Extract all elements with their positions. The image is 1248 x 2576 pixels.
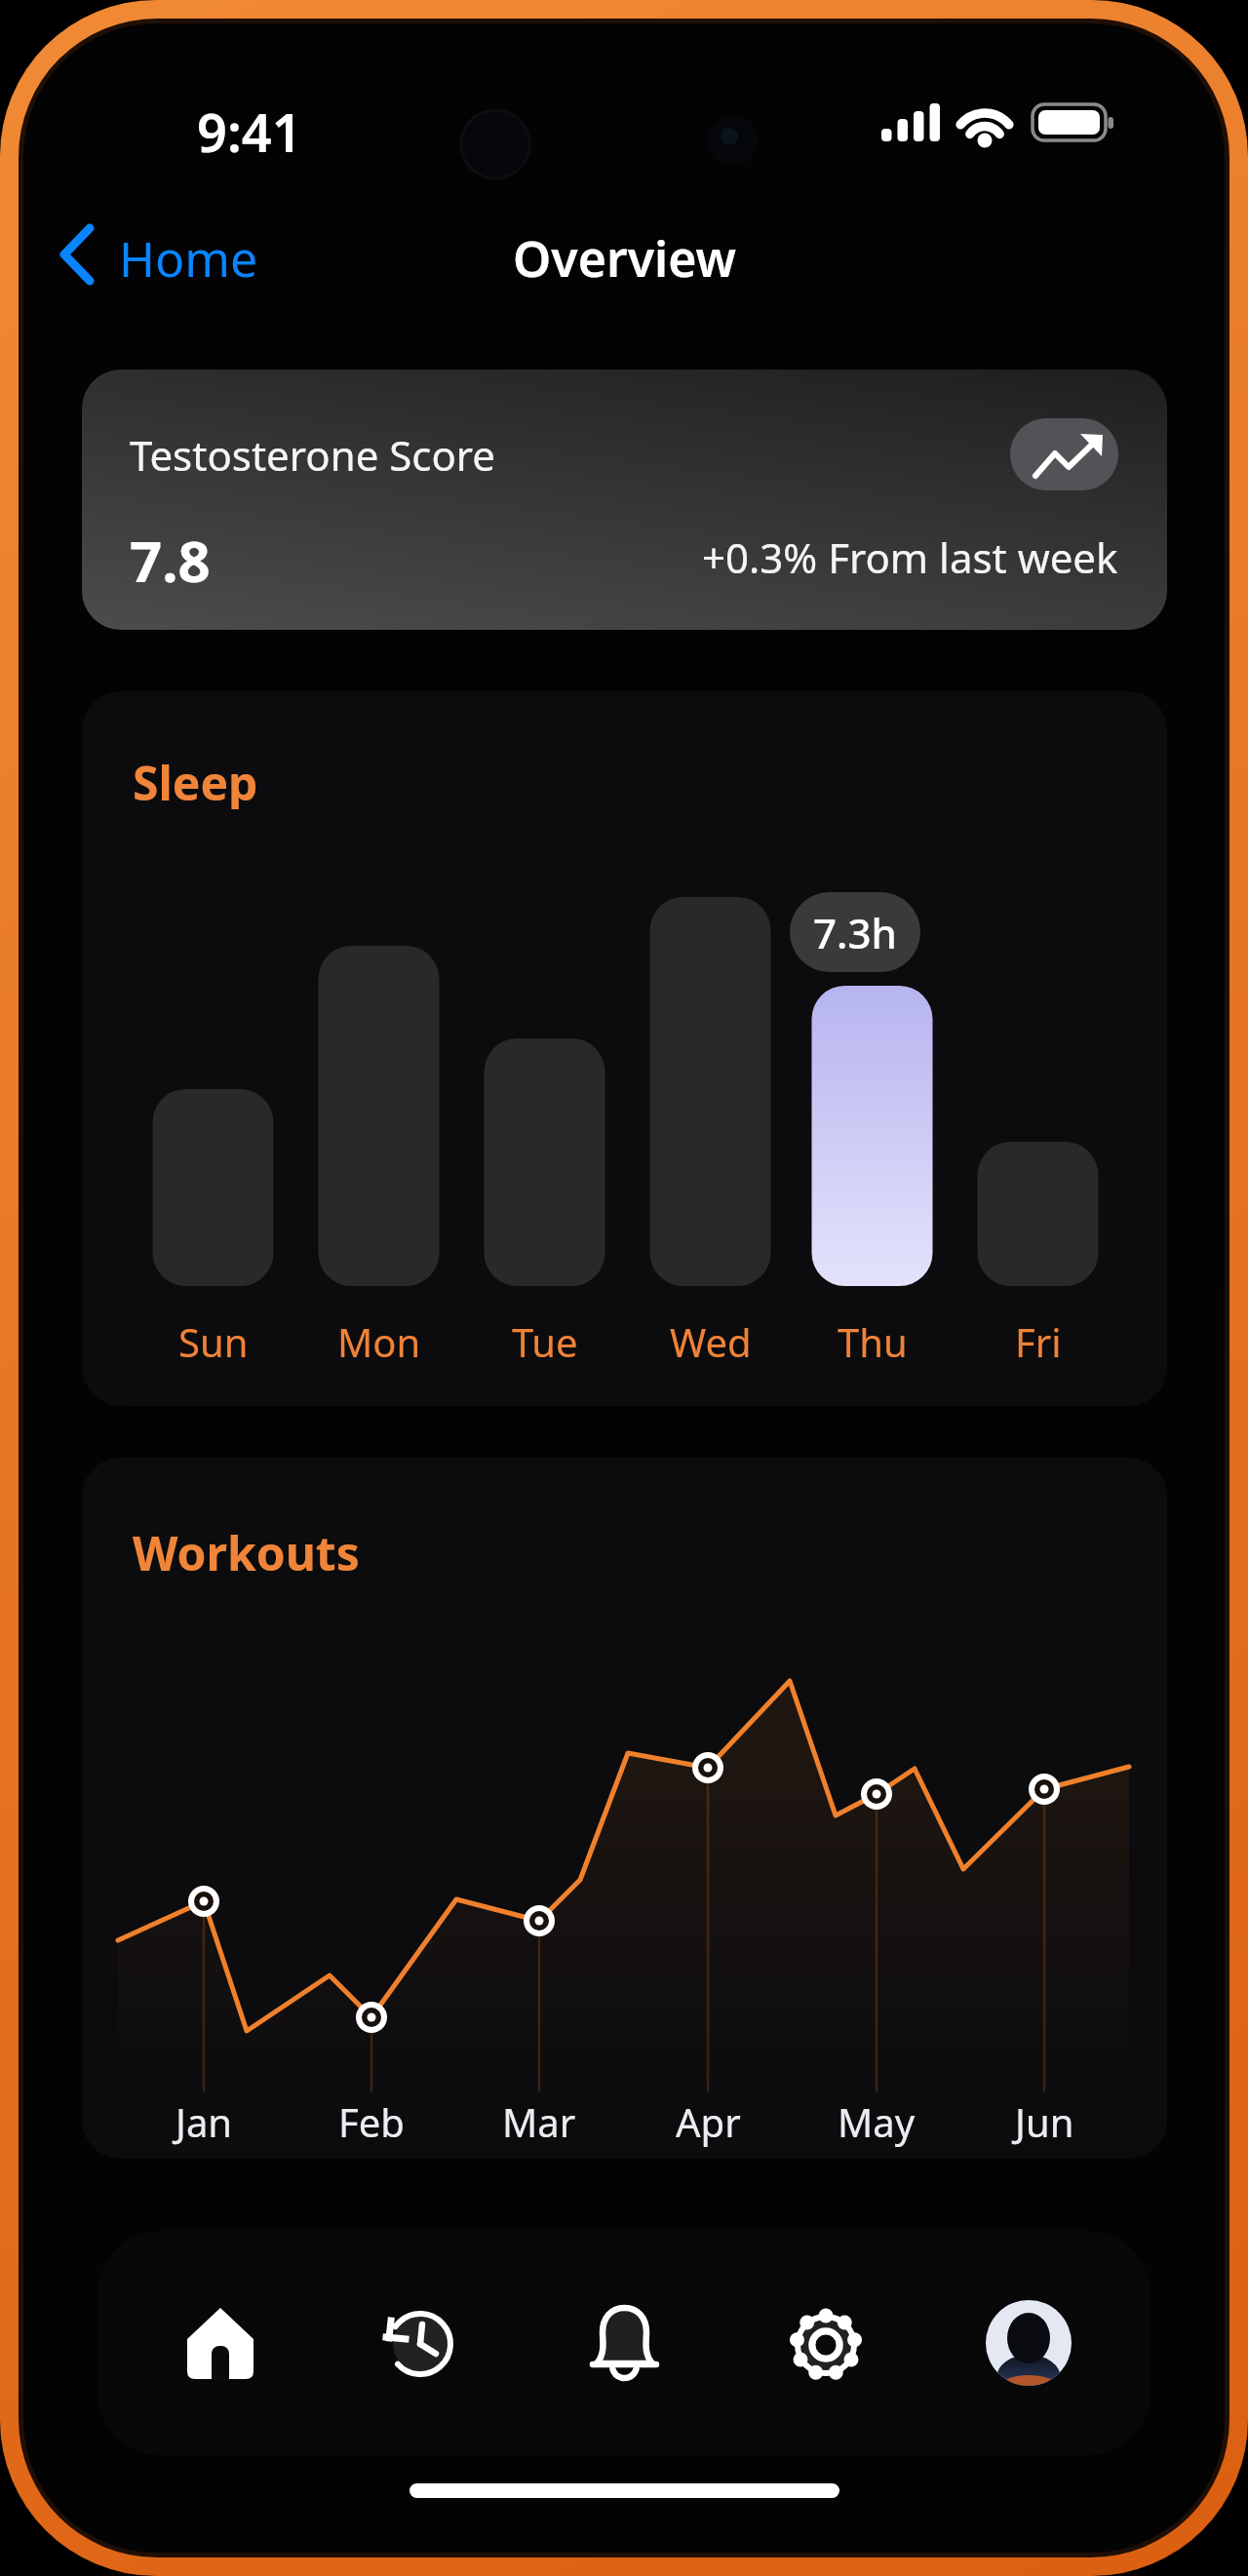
staticText: Wed — [670, 1315, 752, 1368]
button[interactable] — [565, 2284, 682, 2401]
staticText: Workouts — [133, 1521, 360, 1580]
staticText: Sleep — [133, 751, 258, 809]
staticText: Fri — [1015, 1315, 1062, 1368]
staticText: Testosterone Score — [130, 427, 496, 483]
staticText: +0.3% From last week — [702, 529, 1118, 585]
button[interactable] — [767, 2284, 884, 2401]
button[interactable] — [970, 2284, 1087, 2401]
button[interactable] — [161, 2284, 278, 2401]
staticText: Mon — [337, 1315, 421, 1368]
staticText: Tue — [512, 1315, 578, 1368]
button[interactable] — [1010, 418, 1118, 490]
button[interactable] — [360, 2284, 477, 2401]
staticText: May — [838, 2095, 916, 2148]
staticText: Mar — [502, 2095, 576, 2148]
button[interactable] — [82, 370, 1167, 630]
button[interactable] — [55, 216, 347, 293]
staticText: Apr — [676, 2095, 741, 2148]
staticText: 9:41 — [197, 96, 302, 154]
staticText: Thu — [838, 1315, 908, 1368]
staticText: Jun — [1015, 2095, 1074, 2148]
staticText: Sun — [178, 1315, 249, 1368]
staticText: Feb — [338, 2095, 405, 2148]
staticText: Jan — [175, 2095, 233, 2148]
staticText: Home — [119, 225, 258, 286]
staticText: Overview — [513, 225, 736, 286]
staticText: 7.8 — [130, 522, 211, 592]
staticText: 7.3h — [813, 905, 897, 960]
